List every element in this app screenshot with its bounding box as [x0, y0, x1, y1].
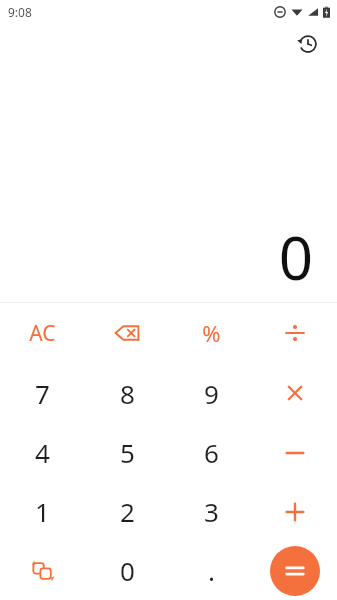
staticText: . — [208, 553, 215, 588]
staticText: AC — [29, 319, 56, 348]
staticText: % — [202, 318, 221, 348]
button[interactable]: 1 — [0, 482, 85, 541]
button[interactable]: Divide — [253, 303, 337, 363]
staticText: 9 — [204, 376, 219, 411]
button[interactable]: Multiply — [253, 363, 337, 423]
button[interactable]: 6 — [169, 423, 253, 482]
button[interactable]: Minus — [253, 423, 337, 482]
staticText: 4 — [35, 435, 50, 470]
button[interactable]: 8 — [85, 363, 169, 423]
button[interactable]: History — [291, 27, 325, 61]
button[interactable]: 7 — [0, 363, 85, 423]
button[interactable]: Equals — [270, 546, 320, 596]
button[interactable]: Backspace — [85, 303, 169, 363]
staticText: 7 — [35, 376, 50, 411]
staticText: 8 — [120, 376, 135, 411]
button[interactable]: Unit converter — [0, 541, 85, 600]
button[interactable]: 9 — [169, 363, 253, 423]
button[interactable]: 4 — [0, 423, 85, 482]
staticText: 2 — [120, 494, 135, 529]
staticText: 5 — [120, 435, 135, 470]
staticText: 9:08 — [8, 4, 32, 20]
button[interactable]: 0 — [85, 541, 169, 600]
staticText: 3 — [204, 494, 219, 529]
button[interactable]: 3 — [169, 482, 253, 541]
button[interactable]: 2 — [85, 482, 169, 541]
staticText: 1 — [35, 494, 50, 529]
button[interactable]: 5 — [85, 423, 169, 482]
button[interactable]: Plus — [253, 482, 337, 541]
staticText: 0 — [278, 216, 313, 298]
staticText: 6 — [204, 435, 219, 470]
button[interactable]: AC — [0, 303, 85, 363]
button[interactable]: . — [169, 541, 253, 600]
staticText: 0 — [120, 553, 135, 588]
button[interactable]: % — [169, 303, 253, 363]
